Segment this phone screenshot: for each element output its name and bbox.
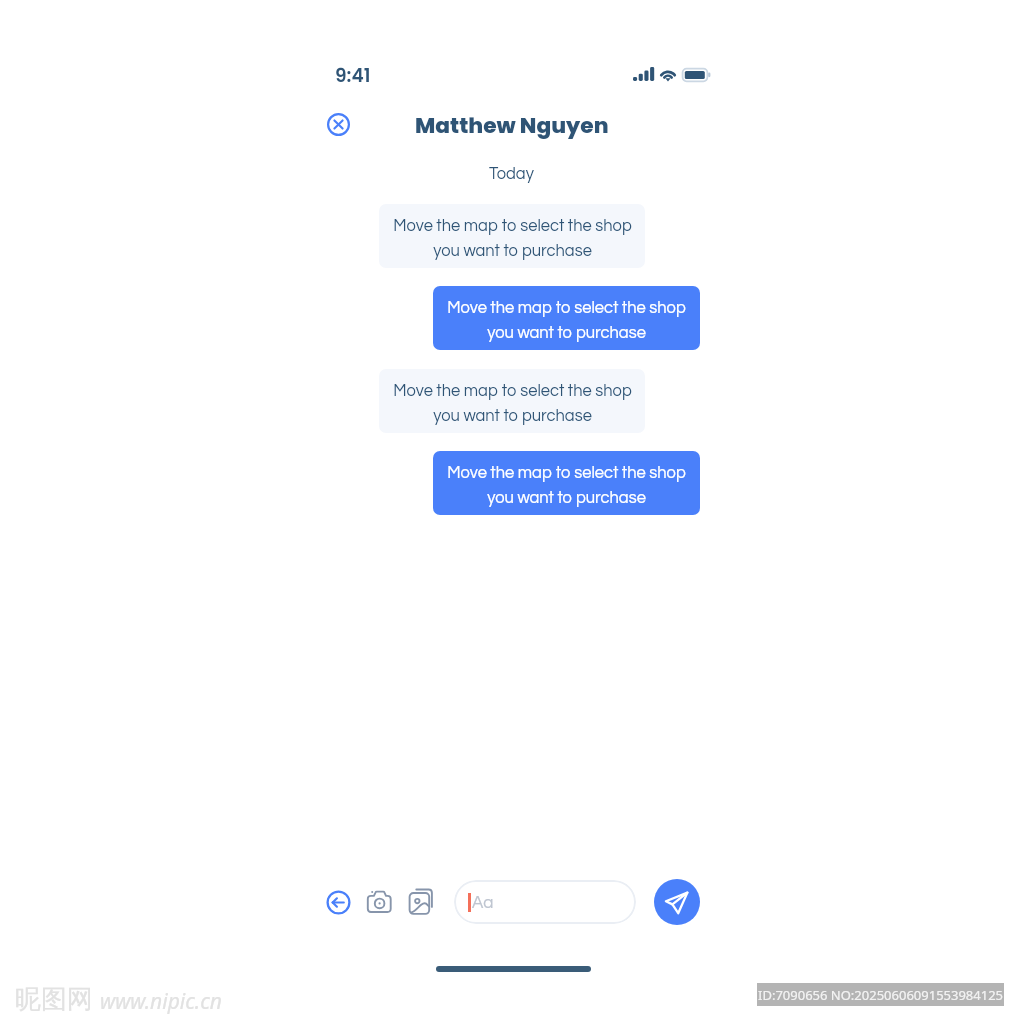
button[interactable]: Camera <box>366 889 393 915</box>
staticText: Move the map to select the shop you want… <box>447 464 686 506</box>
staticText: www.nipic.cn <box>100 987 222 1016</box>
staticText: Matthew Nguyen <box>415 110 609 140</box>
staticText: Today <box>489 165 534 182</box>
staticText: 9:41 <box>335 63 371 89</box>
button[interactable]: Move the map to select the shop you want… <box>379 369 645 433</box>
button[interactable]: Close <box>326 112 351 137</box>
staticText: 昵图网 <box>15 983 93 1016</box>
button[interactable]: Move the map to select the shop you want… <box>433 451 700 515</box>
staticText: Aa <box>472 894 494 912</box>
staticText: Move the map to select the shop you want… <box>393 217 632 259</box>
staticText: Move the map to select the shop you want… <box>393 382 632 424</box>
staticText: Move the map to select the shop you want… <box>447 299 686 341</box>
button[interactable]: Move the map to select the shop you want… <box>379 204 645 268</box>
button[interactable]: Back <box>326 890 351 915</box>
button[interactable]: Aa <box>454 880 636 924</box>
button[interactable]: Send <box>654 879 700 925</box>
button[interactable]: Move the map to select the shop you want… <box>433 286 700 350</box>
staticText: ID:7090656 NO:20250606091553984125 <box>758 986 1004 1004</box>
button[interactable]: Photos <box>407 887 435 917</box>
